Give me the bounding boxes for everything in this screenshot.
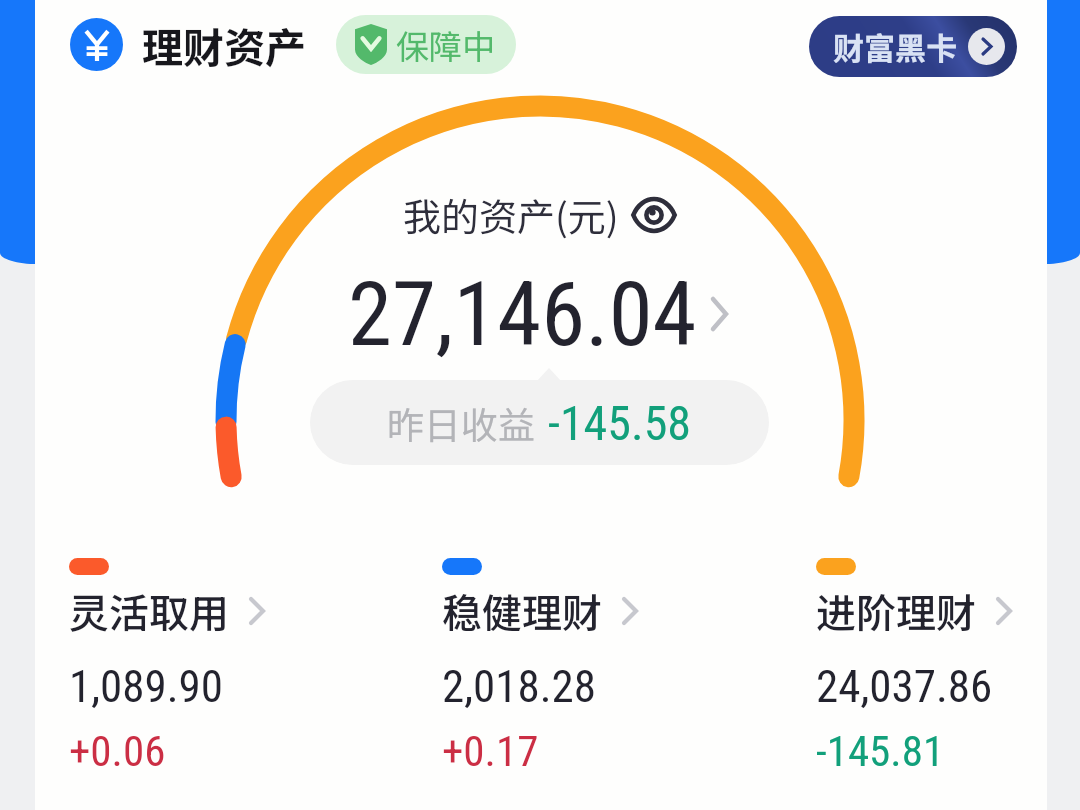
staticText: +0.06: [69, 726, 166, 776]
staticText: -145.58: [548, 395, 692, 451]
staticText: +0.17: [442, 726, 539, 776]
button[interactable]: 稳健理财: [442, 555, 782, 776]
other: Wealth: [70, 18, 123, 71]
staticText: 灵活取用: [69, 582, 229, 640]
staticText: 进阶理财: [816, 582, 976, 640]
staticText: 昨日收益: [387, 396, 535, 450]
button[interactable]: 昨日收益: [310, 380, 769, 465]
staticText: 27,146.04: [348, 262, 697, 366]
button[interactable]: Hide amount: [630, 195, 678, 235]
staticText: 财富黑卡: [833, 24, 957, 69]
staticText: -145.81: [816, 726, 945, 776]
button[interactable]: 保障中: [355, 15, 495, 74]
button[interactable]: 灵活取用: [69, 555, 409, 776]
staticText: 稳健理财: [442, 582, 602, 640]
button[interactable]: 进阶理财: [816, 555, 1080, 776]
staticText: 24,037.86: [816, 660, 993, 713]
staticText: 保障中: [396, 21, 495, 69]
staticText: 2,018.28: [442, 660, 597, 713]
button[interactable]: 财富黑卡: [833, 16, 1005, 77]
staticText: 理财资产: [142, 15, 306, 74]
other: Open wealth black card: [968, 28, 1005, 65]
staticText: 1,089.90: [69, 660, 224, 713]
staticText: 我的资产(元): [403, 187, 619, 242]
